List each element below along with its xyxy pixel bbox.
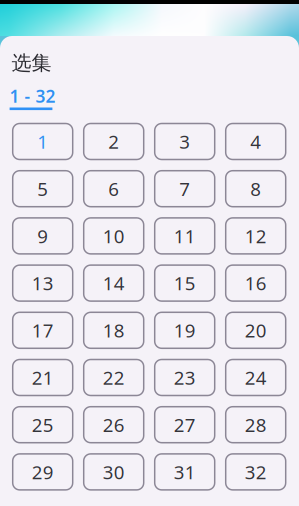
button[interactable]: 2 [84,123,144,159]
button[interactable]: 16 [226,265,286,301]
staticText: 21 [32,365,54,390]
button[interactable]: 10 [84,218,144,254]
staticText: 26 [103,412,125,437]
staticText: 1 - 32 [10,84,56,107]
button[interactable]: 9 [13,218,73,254]
staticText: 12 [245,223,267,248]
button[interactable]: 31 [155,454,215,490]
button[interactable]: 24 [226,359,286,395]
staticText: 31 [174,459,196,484]
staticText: 4 [250,129,261,154]
button[interactable]: 7 [155,171,215,207]
staticText: 2 [108,129,119,154]
staticText: 20 [245,318,267,343]
staticText: 7 [179,176,190,201]
button[interactable]: 12 [226,218,286,254]
staticText: 1 [37,129,48,154]
staticText: 15 [174,271,196,295]
staticText: 30 [103,459,125,484]
button[interactable]: 1 - 32 [0,88,56,110]
button[interactable]: 19 [155,312,215,348]
button[interactable]: 27 [155,407,215,443]
staticText: 23 [174,365,196,390]
staticText: 27 [174,412,196,437]
staticText: 29 [32,459,54,484]
button[interactable]: 28 [226,407,286,443]
button[interactable]: 5 [13,171,73,207]
button[interactable]: 6 [84,171,144,207]
staticText: 选集 [11,51,51,75]
button[interactable]: 21 [13,359,73,395]
staticText: 16 [245,271,267,295]
staticText: 14 [103,271,125,295]
staticText: 24 [245,365,267,390]
button[interactable]: 8 [226,171,286,207]
staticText: 22 [103,365,125,390]
button[interactable]: 14 [84,265,144,301]
button[interactable]: 4 [226,123,286,159]
button[interactable]: 30 [84,454,144,490]
button[interactable]: 17 [13,312,73,348]
button[interactable]: 26 [84,407,144,443]
staticText: 32 [245,459,267,484]
staticText: 10 [103,223,125,248]
button[interactable]: 11 [155,218,215,254]
staticText: 8 [250,176,261,201]
staticText: 11 [174,223,196,248]
button[interactable]: 15 [155,265,215,301]
staticText: 19 [174,318,196,343]
staticText: 28 [245,412,267,437]
staticText: 18 [103,318,125,343]
button[interactable]: 32 [226,454,286,490]
staticText: 9 [37,223,48,248]
staticText: 13 [32,271,54,295]
button[interactable]: 29 [13,454,73,490]
button[interactable]: 3 [155,123,215,159]
button[interactable]: 23 [155,359,215,395]
staticText: 5 [37,176,48,201]
staticText: 25 [32,412,54,437]
button[interactable]: 25 [13,407,73,443]
staticText: 17 [32,318,54,343]
button[interactable]: 22 [84,359,144,395]
button[interactable]: 1 [13,123,73,159]
button[interactable]: 20 [226,312,286,348]
button[interactable]: 13 [13,265,73,301]
button[interactable]: 18 [84,312,144,348]
staticText: 6 [108,176,119,201]
staticText: 3 [179,129,190,154]
